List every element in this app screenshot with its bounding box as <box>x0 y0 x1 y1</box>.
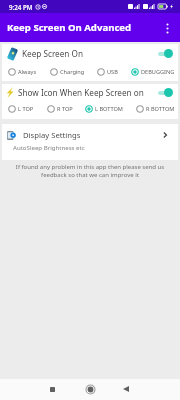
staticText: Charging <box>60 68 85 76</box>
button[interactable]: Toggle <box>152 86 174 99</box>
button[interactable]: R TOP <box>47 105 73 113</box>
button[interactable]: USB <box>97 68 118 76</box>
staticText: If found any problem in this app then pl… <box>14 163 166 179</box>
button[interactable]: Display Settings <box>2 124 178 142</box>
button[interactable]: R BOTTOM <box>136 105 175 113</box>
staticText: Display Settings <box>23 130 81 140</box>
button[interactable]: Charging <box>50 68 85 76</box>
staticText: Always <box>18 68 37 76</box>
staticText: Keep Screen On <box>22 48 83 59</box>
button[interactable]: L TOP <box>8 105 34 113</box>
button[interactable]: Recents <box>42 379 62 399</box>
staticText: Keep Screen On Advanced <box>7 21 132 34</box>
button[interactable]: Always <box>8 68 37 76</box>
button[interactable]: Home <box>80 379 100 399</box>
button[interactable]: Back <box>116 379 136 399</box>
staticText: R TOP <box>57 105 73 113</box>
button[interactable]: Show Icon When Keep Screen on <box>2 84 178 101</box>
staticText: 9:24 PM <box>9 3 33 11</box>
button[interactable]: Toggle <box>152 47 174 60</box>
staticText: USB <box>107 68 118 76</box>
button[interactable]: L BOTTOM <box>85 105 123 113</box>
staticText: R BOTTOM <box>146 105 175 113</box>
staticText: DEBUGGING <box>141 68 175 76</box>
staticText: L BOTTOM <box>95 105 123 113</box>
staticText: L TOP <box>18 105 34 113</box>
button[interactable]: DEBUGGING <box>131 68 175 76</box>
button[interactable]: Keep Screen On <box>2 44 178 62</box>
button[interactable]: More options <box>157 18 177 38</box>
staticText: AutoSleep Brightness etc <box>13 143 85 151</box>
staticText: Show Icon When Keep Screen on <box>18 87 144 98</box>
